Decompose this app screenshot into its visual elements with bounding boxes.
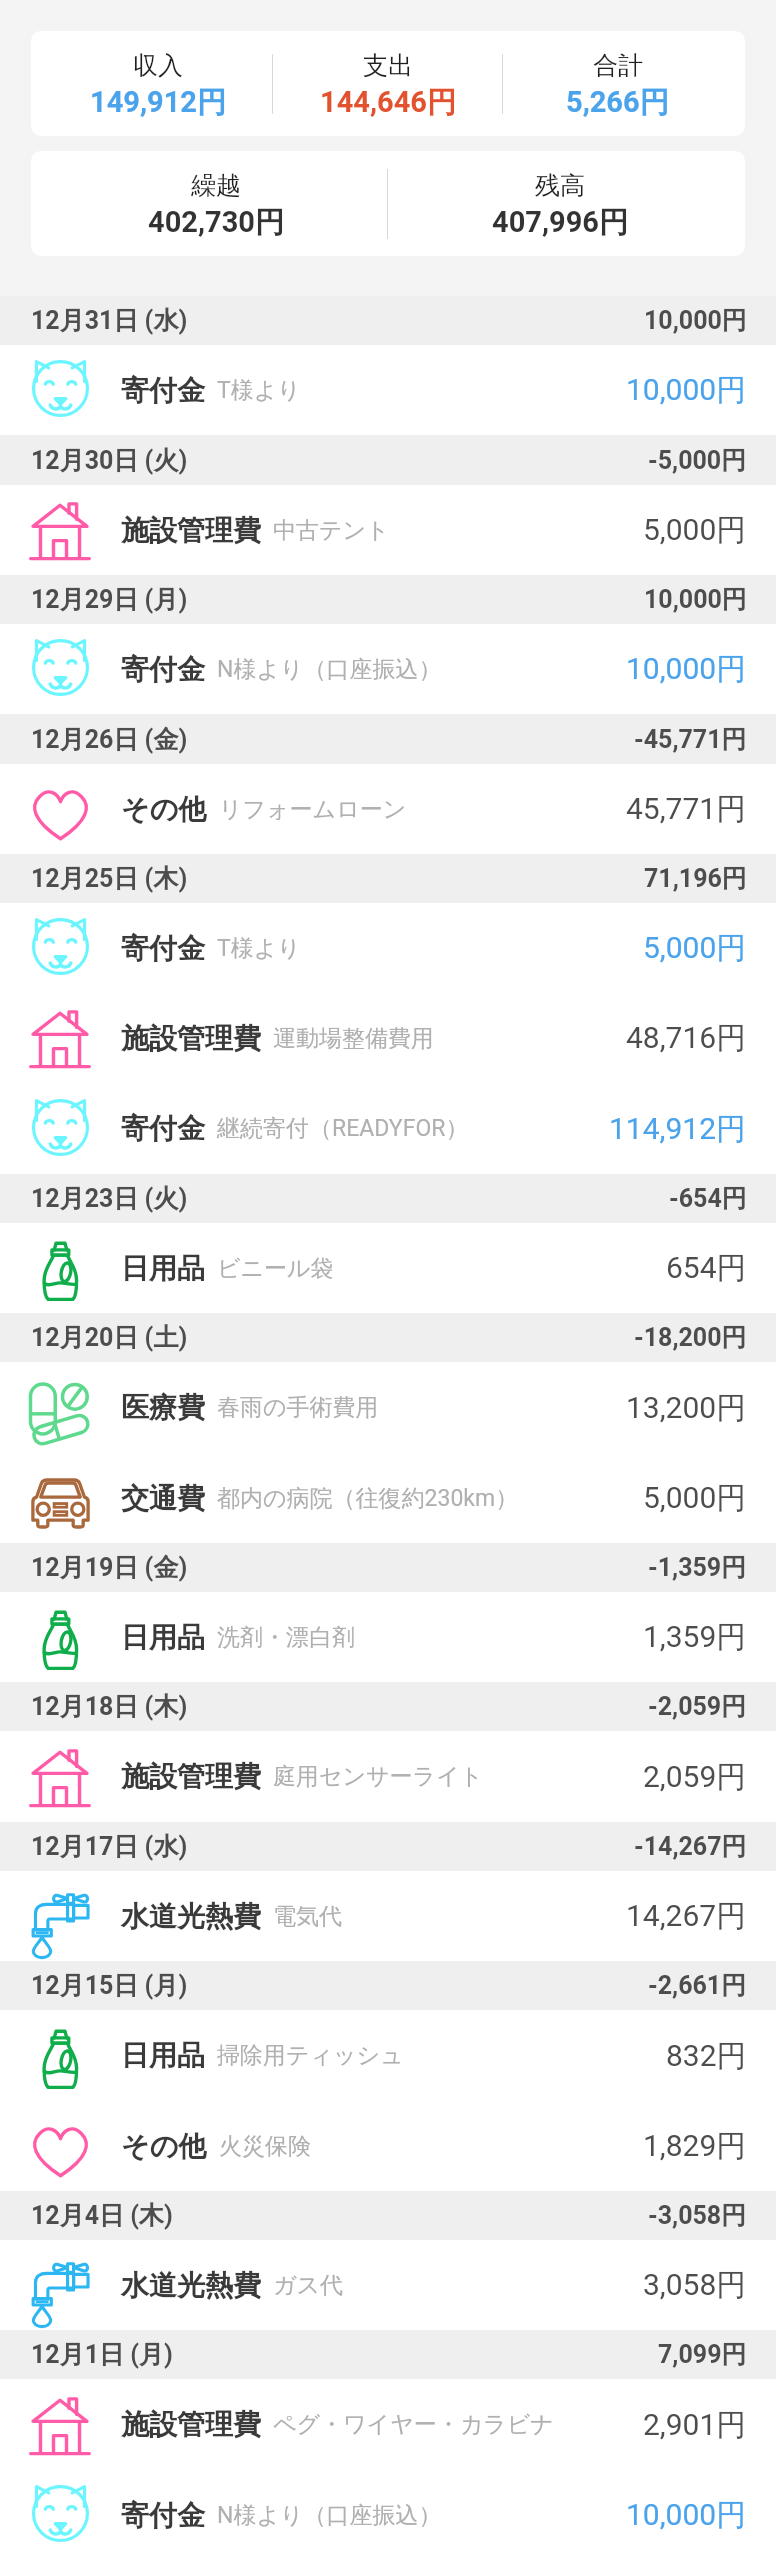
- staticText: 掃除用ティッシュ: [217, 2041, 404, 2070]
- staticText: ペグ・ワイヤー・カラビナ: [273, 2410, 554, 2439]
- button[interactable]: その他: [0, 2101, 776, 2191]
- staticText: 寄付金: [121, 373, 205, 408]
- staticText: 春雨の手術費用: [217, 1393, 379, 1422]
- button[interactable]: その他: [0, 764, 776, 854]
- staticText: 407,996円: [492, 204, 628, 241]
- staticText: 14,267円: [626, 1897, 747, 1935]
- button[interactable]: 日用品: [0, 1592, 776, 1682]
- staticText: -1,359円: [648, 1552, 747, 1583]
- staticText: 402,730円: [148, 204, 284, 241]
- staticText: T様より: [217, 376, 301, 405]
- staticText: 12月26日 (金): [31, 724, 188, 755]
- staticText: 12月17日 (水): [31, 1831, 188, 1862]
- button[interactable]: 施設管理費: [0, 2379, 776, 2470]
- staticText: 施設管理費: [121, 2407, 261, 2442]
- staticText: 2,059円: [643, 1758, 747, 1796]
- staticText: 運動場整備費用: [273, 1024, 434, 1053]
- staticText: 庭用センサーライト: [273, 1762, 484, 1791]
- staticText: 12月4日 (木): [31, 2200, 173, 2231]
- staticText: 12月18日 (木): [31, 1691, 188, 1722]
- staticText: 繰越: [191, 170, 241, 201]
- staticText: 3,058円: [643, 2266, 747, 2304]
- button[interactable]: 交通費: [0, 1453, 776, 1543]
- staticText: 5,000円: [643, 929, 747, 967]
- button[interactable]: 水道光熱費: [0, 2240, 776, 2330]
- staticText: -2,059円: [648, 1691, 747, 1722]
- staticText: 寄付金: [121, 1111, 205, 1146]
- staticText: 5,266円: [566, 84, 669, 121]
- button[interactable]: 施設管理費: [0, 485, 776, 575]
- staticText: 114,912円: [609, 1110, 747, 1148]
- staticText: 水道光熱費: [121, 1899, 261, 1934]
- staticText: 医療費: [121, 1390, 205, 1425]
- staticText: 都内の病院（往復約230km）: [217, 1484, 519, 1513]
- staticText: -3,058円: [648, 2200, 747, 2231]
- staticText: -654円: [669, 1183, 747, 1214]
- staticText: 寄付金: [121, 652, 205, 687]
- staticText: リフォームローン: [219, 795, 407, 824]
- staticText: 12月31日 (水): [31, 305, 188, 336]
- staticText: 45,771円: [626, 790, 747, 828]
- staticText: 149,912円: [90, 84, 226, 121]
- staticText: T様より: [217, 934, 301, 963]
- staticText: 合計: [593, 50, 643, 81]
- staticText: -5,000円: [648, 445, 747, 476]
- staticText: 施設管理費: [121, 513, 261, 548]
- staticText: 1,359円: [643, 1618, 747, 1656]
- staticText: N様より（口座振込）: [217, 2501, 442, 2530]
- button[interactable]: 寄付金: [0, 903, 776, 993]
- staticText: 施設管理費: [121, 1759, 261, 1794]
- staticText: 2,901円: [643, 2406, 747, 2444]
- staticText: 収入: [133, 50, 183, 81]
- staticText: その他: [121, 2129, 207, 2164]
- staticText: 中古テント: [273, 516, 390, 545]
- staticText: 12月20日 (土): [31, 1322, 188, 1353]
- button[interactable]: 寄付金: [0, 624, 776, 714]
- staticText: 支出: [363, 50, 413, 81]
- staticText: 12月25日 (木): [31, 863, 188, 894]
- staticText: 残高: [535, 170, 585, 201]
- staticText: 71,196円: [644, 863, 747, 894]
- staticText: 10,000円: [626, 2496, 747, 2534]
- button[interactable]: 水道光熱費: [0, 1871, 776, 1961]
- staticText: 交通費: [121, 1481, 205, 1516]
- button[interactable]: 寄付金: [0, 345, 776, 435]
- button[interactable]: 日用品: [0, 2010, 776, 2101]
- staticText: ビニール袋: [217, 1254, 334, 1283]
- button[interactable]: 施設管理費: [0, 993, 776, 1083]
- staticText: 継続寄付（READYFOR）: [217, 1114, 469, 1143]
- staticText: 144,646円: [320, 84, 456, 121]
- staticText: 7,099円: [658, 2339, 747, 2370]
- staticText: 日用品: [121, 2038, 205, 2073]
- staticText: 日用品: [121, 1620, 205, 1655]
- button[interactable]: 医療費: [0, 1362, 776, 1453]
- staticText: ガス代: [273, 2271, 344, 2300]
- staticText: 12月19日 (金): [31, 1552, 188, 1583]
- staticText: 832円: [666, 2037, 747, 2075]
- staticText: 火災保険: [219, 2132, 311, 2161]
- staticText: -14,267円: [634, 1831, 747, 1862]
- staticText: 12月1日 (月): [31, 2339, 173, 2370]
- staticText: 12月29日 (月): [31, 584, 188, 615]
- staticText: 1,829円: [643, 2127, 747, 2165]
- staticText: 5,000円: [643, 1479, 747, 1517]
- button[interactable]: 寄付金: [0, 2470, 776, 2560]
- staticText: 10,000円: [626, 371, 747, 409]
- staticText: -18,200円: [634, 1322, 747, 1353]
- staticText: 電気代: [273, 1902, 342, 1931]
- staticText: 10,000円: [626, 650, 747, 688]
- staticText: その他: [121, 792, 207, 827]
- staticText: 13,200円: [626, 1389, 747, 1427]
- staticText: 12月30日 (火): [31, 445, 188, 476]
- staticText: 寄付金: [121, 2498, 205, 2533]
- button[interactable]: 寄付金: [0, 1083, 776, 1174]
- staticText: 日用品: [121, 1251, 205, 1286]
- button[interactable]: 施設管理費: [0, 1731, 776, 1822]
- staticText: -45,771円: [634, 724, 747, 755]
- button[interactable]: 日用品: [0, 1223, 776, 1313]
- staticText: 水道光熱費: [121, 2268, 261, 2303]
- staticText: 10,000円: [644, 584, 747, 615]
- staticText: -2,661円: [648, 1970, 747, 2001]
- staticText: 洗剤・漂白剤: [217, 1623, 355, 1652]
- staticText: 654円: [666, 1249, 747, 1287]
